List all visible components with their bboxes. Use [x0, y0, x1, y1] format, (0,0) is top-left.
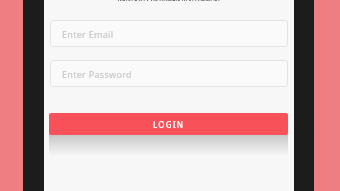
button[interactable]: Email input — [50, 20, 288, 47]
staticText: Enter Password — [62, 68, 132, 80]
button[interactable]: Password input — [50, 60, 288, 87]
staticText: LOGIN — [153, 119, 185, 130]
button[interactable]: LOGIN — [49, 113, 288, 135]
staticText: Enter Email — [62, 28, 114, 40]
staticText: UNIVERSITY OF HUMAN DEVELOPMENT — [117, 0, 221, 1]
